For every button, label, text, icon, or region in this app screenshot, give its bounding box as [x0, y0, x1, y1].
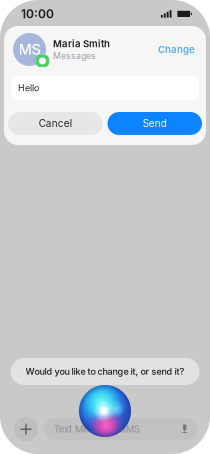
staticText: Messages	[53, 50, 96, 61]
staticText: Cancel	[39, 117, 72, 129]
button[interactable]: Send	[107, 112, 202, 135]
staticText: MS	[18, 41, 40, 58]
staticText: Send	[143, 117, 167, 129]
staticText: Hello	[18, 83, 39, 93]
staticText: 10:00	[21, 7, 54, 21]
button[interactable]: Cancel	[8, 112, 102, 135]
staticText: Text Message SMS	[54, 423, 140, 435]
button[interactable]: Add attachment	[14, 417, 38, 441]
staticText: Maria Smith	[53, 38, 110, 49]
staticText: Change	[158, 44, 195, 55]
staticText: Would you like to change it, or send it?	[25, 366, 184, 377]
button[interactable]: Change	[156, 39, 197, 60]
